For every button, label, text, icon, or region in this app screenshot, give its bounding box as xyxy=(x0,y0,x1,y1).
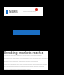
staticText: eiusmod tempor incididunt ut labore et d… xyxy=(4,57,48,60)
button[interactable]: Logo xyxy=(4,7,43,16)
staticText: NEWS xyxy=(9,10,18,14)
other: Notifications xyxy=(35,8,38,11)
staticText: nulla pariatur excepteur sint xyxy=(4,68,31,70)
staticText: Breaking: markets reach a record high to… xyxy=(4,51,48,55)
staticText: in reprehenderit voluptate velit esse ci… xyxy=(4,65,48,68)
button[interactable]: Breaking: markets reach a record high to… xyxy=(4,51,48,70)
staticText: nisi ut aliquip ex ea commodo consequat … xyxy=(4,63,48,66)
staticText: Top Sections xyxy=(23,10,36,13)
staticText: Lorem ipsum dolor sit amet consectetur a… xyxy=(4,54,48,57)
staticText: enim ad minim veniam quis nostrud exerci… xyxy=(4,60,48,63)
